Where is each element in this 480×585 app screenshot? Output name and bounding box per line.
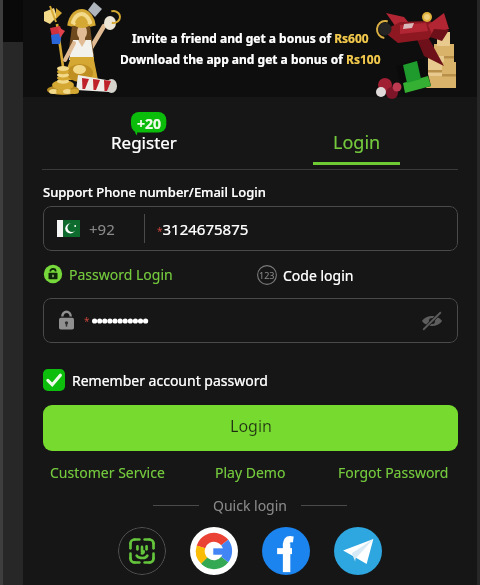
button[interactable]: Login: [313, 130, 400, 165]
staticText: Invite a friend and get a bonus of Rs600: [132, 30, 369, 46]
staticText: Support Phone number/Email Login: [43, 183, 266, 201]
staticText: Forgot Password: [338, 463, 449, 482]
staticText: Customer Service: [50, 463, 165, 482]
staticText: Password Login: [69, 265, 173, 284]
staticText: +92: [89, 219, 115, 239]
staticText: Register: [111, 131, 177, 154]
button[interactable]: Face ID login: [118, 527, 166, 575]
staticText: *: [84, 314, 90, 328]
button[interactable]: Show password: [420, 309, 444, 333]
button[interactable]: Register: [111, 131, 177, 154]
button[interactable]: 123: [257, 265, 354, 285]
button[interactable]: Telegram login: [334, 527, 382, 575]
staticText: Play Demo: [215, 463, 286, 482]
staticText: Download the app and get a bonus of Rs10…: [120, 51, 381, 67]
staticText: Remember account password: [72, 371, 268, 390]
button[interactable]: Google login: [190, 527, 238, 575]
staticText: +20: [137, 114, 162, 133]
button[interactable]: Remember account password: [43, 369, 268, 391]
button[interactable]: Login: [43, 405, 458, 451]
button[interactable]: Password Login: [43, 264, 173, 284]
staticText: Login: [333, 130, 381, 155]
button[interactable]: Play Demo: [179, 463, 322, 482]
staticText: Login: [230, 415, 272, 437]
button[interactable]: Customer Service: [36, 463, 179, 482]
button[interactable]: Facebook login: [262, 527, 310, 575]
staticText: Code login: [283, 266, 354, 285]
staticText: Quick login: [213, 496, 287, 515]
staticText: 123: [259, 269, 275, 281]
staticText: *3124675875: [157, 219, 249, 239]
button[interactable]: Forgot Password: [322, 463, 465, 482]
